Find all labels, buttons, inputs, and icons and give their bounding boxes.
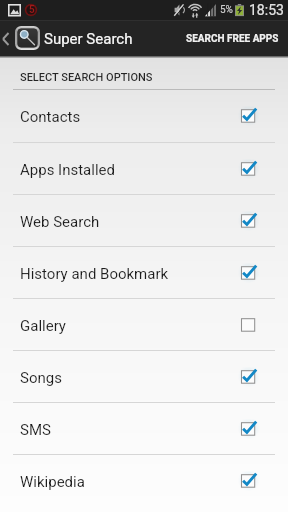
staticText: History and Bookmark [20,265,169,283]
button[interactable]: SEARCH FREE APPS [176,23,288,53]
staticText: SMS [20,421,51,439]
button[interactable]: Web Search [0,195,288,246]
staticText: 5 [29,4,35,16]
button[interactable]: Contacts [0,90,288,142]
staticText: Super Search [44,30,133,48]
button[interactable]: History and Bookmark [0,247,288,298]
staticText: Contacts [20,108,81,126]
button[interactable]: Gallery [0,299,288,350]
staticText: Wikipedia [20,473,85,491]
staticText: Gallery [20,317,66,335]
staticText: SEARCH FREE APPS [186,33,279,45]
button[interactable]: Wikipedia [0,455,288,506]
staticText: Songs [20,369,62,387]
staticText: 5% [220,4,233,16]
button[interactable]: SMS [0,403,288,454]
button[interactable]: Songs [0,351,288,402]
other: Up [1,28,10,48]
staticText: SELECT SEARCH OPTIONS [20,71,153,84]
button[interactable]: Up [0,23,139,53]
staticText: 18:53 [249,2,284,18]
staticText: Web Search [20,213,100,231]
button[interactable]: Apps Installed [0,143,288,194]
staticText: Apps Installed [20,161,115,179]
